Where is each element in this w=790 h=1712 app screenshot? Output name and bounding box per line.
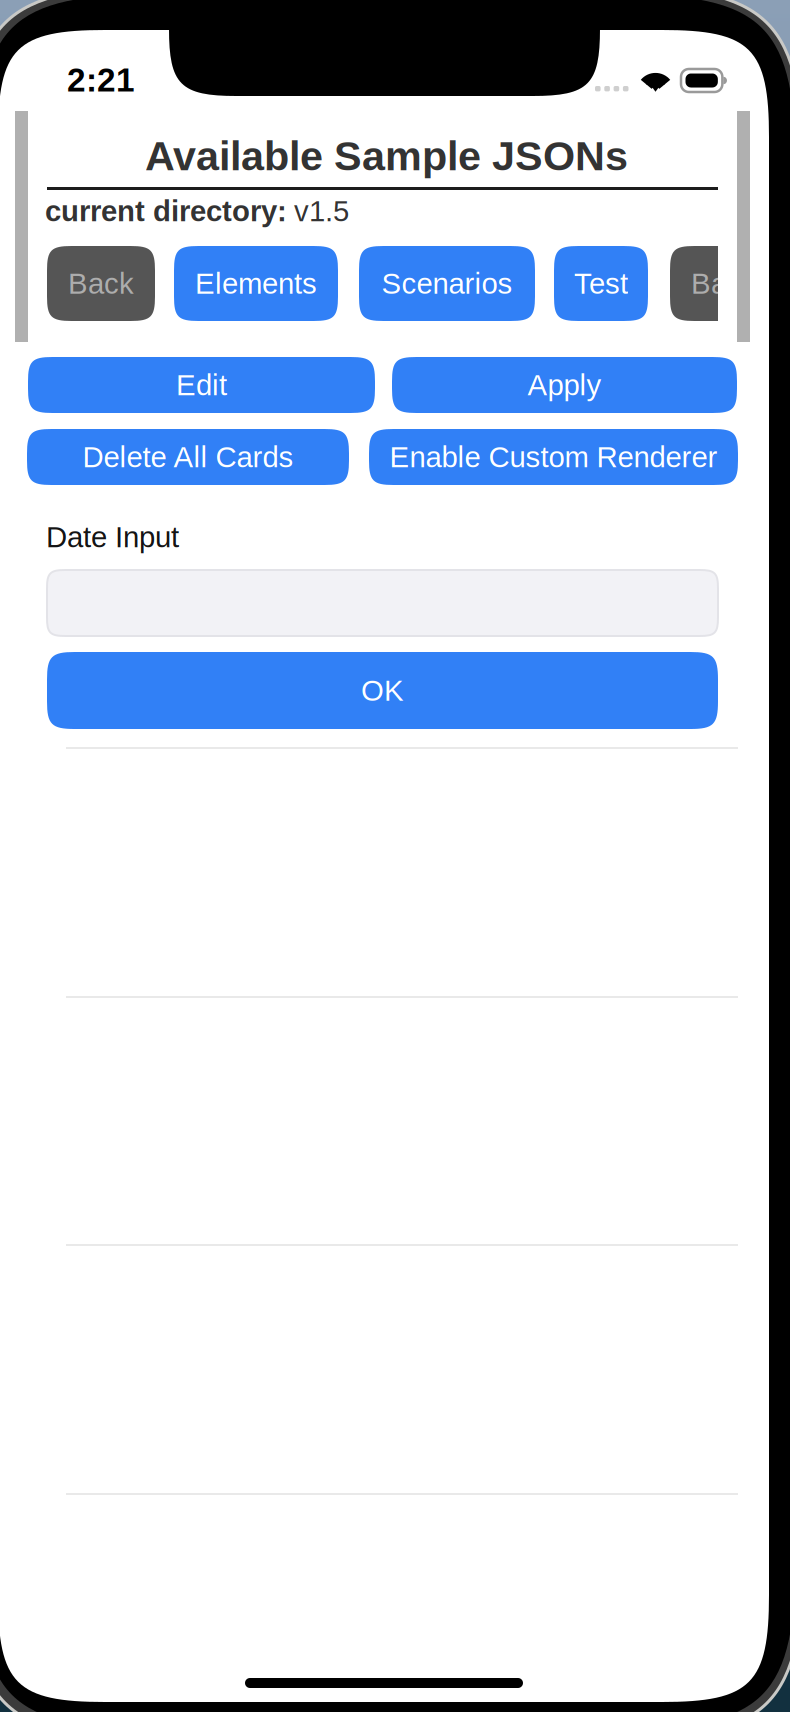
staticText: current directory: <box>45 195 287 227</box>
button[interactable]: Delete All Cards <box>27 429 349 485</box>
button[interactable]: OK <box>47 652 718 729</box>
staticText: Apply <box>527 369 601 401</box>
staticText: v1.5 <box>294 195 349 227</box>
button[interactable]: Elements <box>174 246 338 321</box>
staticText: Back <box>68 267 134 300</box>
button[interactable]: Scenarios <box>359 246 535 321</box>
button[interactable]: Enable Custom Renderer <box>369 429 738 485</box>
staticText: Enable Custom Renderer <box>389 441 717 473</box>
button[interactable]: Edit <box>28 357 375 413</box>
button[interactable]: Apply <box>392 357 737 413</box>
button[interactable]: Test <box>554 246 648 321</box>
button[interactable]: Back <box>670 246 778 321</box>
staticText: Elements <box>195 267 317 300</box>
staticText: Scenarios <box>381 267 512 300</box>
button[interactable]: Back <box>47 246 155 321</box>
staticText: OK <box>361 674 404 707</box>
staticText: Delete All Cards <box>82 441 293 473</box>
staticText: 2:21 <box>67 61 135 99</box>
staticText: Edit <box>176 369 227 401</box>
staticText: Back <box>691 267 757 300</box>
staticText: Test <box>574 267 628 300</box>
staticText: Date Input <box>46 521 179 553</box>
staticText: Available Sample JSONs <box>145 133 628 179</box>
